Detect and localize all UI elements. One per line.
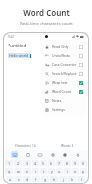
button[interactable]: Clipboard bbox=[24, 151, 31, 158]
button[interactable]: 3 bbox=[23, 160, 31, 166]
staticText: Search/Replace bbox=[52, 71, 79, 76]
button[interactable]: q bbox=[5, 168, 13, 174]
button[interactable]: Stickers bbox=[61, 151, 68, 158]
staticText: Word Count bbox=[23, 7, 70, 18]
staticText: h bbox=[53, 177, 56, 182]
button[interactable]: r bbox=[32, 168, 39, 174]
staticText: o bbox=[74, 169, 77, 174]
staticText: 9:41 bbox=[8, 35, 15, 39]
staticText: 1 bbox=[8, 161, 11, 166]
staticText: u bbox=[58, 169, 61, 174]
staticText: g bbox=[44, 177, 47, 182]
button[interactable]: 1 bbox=[5, 160, 13, 166]
button[interactable]: a bbox=[7, 176, 14, 182]
staticText: 2 bbox=[17, 161, 20, 166]
staticText: l bbox=[81, 177, 82, 182]
staticText: y bbox=[51, 169, 53, 174]
staticText: j bbox=[63, 177, 64, 182]
staticText: q bbox=[8, 169, 11, 174]
staticText: k bbox=[71, 177, 73, 182]
button[interactable]: h bbox=[50, 176, 58, 182]
staticText: w bbox=[17, 169, 20, 174]
button[interactable]: 7 bbox=[56, 160, 63, 166]
staticText: 3 bbox=[26, 161, 29, 166]
staticText: 6 bbox=[50, 161, 53, 166]
staticText: Notes bbox=[52, 98, 83, 103]
button[interactable]: Read Only bbox=[42, 42, 86, 51]
button[interactable]: l bbox=[77, 176, 85, 182]
button[interactable]: s bbox=[15, 176, 22, 182]
button[interactable]: Settings bbox=[49, 151, 56, 158]
staticText: 5 bbox=[42, 161, 45, 166]
staticText: 9 bbox=[74, 161, 77, 166]
button[interactable]: 6 bbox=[48, 160, 55, 166]
button[interactable]: j bbox=[59, 176, 67, 182]
button[interactable]: p bbox=[80, 168, 87, 174]
button[interactable]: Case Converter bbox=[42, 60, 86, 69]
button[interactable]: y bbox=[48, 168, 55, 174]
button[interactable]: w bbox=[14, 168, 22, 174]
staticText: *untitled bbox=[8, 43, 27, 49]
button[interactable]: Settings bbox=[42, 105, 86, 114]
button[interactable]: Notes bbox=[42, 96, 86, 105]
staticText: Read Only bbox=[52, 44, 79, 49]
button[interactable]: 8 bbox=[64, 160, 71, 166]
button[interactable]: Undo/Redo bbox=[42, 51, 86, 60]
staticText: Word Count bbox=[52, 89, 79, 94]
staticText: d bbox=[26, 177, 29, 182]
staticText: Hello world bbox=[9, 53, 29, 58]
staticText: Undo/Redo bbox=[52, 53, 79, 58]
button[interactable]: Voice input bbox=[74, 151, 81, 158]
staticText: p bbox=[82, 169, 85, 174]
button[interactable]: o bbox=[72, 168, 79, 174]
button[interactable]: t bbox=[40, 168, 47, 174]
button[interactable]: f bbox=[32, 176, 40, 182]
button[interactable]: i bbox=[64, 168, 71, 174]
staticText: e bbox=[26, 169, 29, 174]
staticText: Words 3 bbox=[61, 144, 74, 148]
button[interactable]: u bbox=[56, 168, 63, 174]
button[interactable]: d bbox=[23, 176, 31, 182]
button[interactable]: e bbox=[23, 168, 31, 174]
staticText: t bbox=[43, 169, 45, 174]
staticText: 8 bbox=[66, 161, 69, 166]
staticText: 4 bbox=[34, 161, 37, 166]
button[interactable]: GIF bbox=[36, 151, 43, 158]
staticText: a bbox=[9, 177, 12, 182]
staticText: f bbox=[35, 177, 37, 182]
button[interactable]: k bbox=[68, 176, 76, 182]
button[interactable]: Keyboard bbox=[11, 151, 18, 158]
button[interactable]: Wrap text bbox=[42, 78, 86, 87]
staticText: Settings bbox=[52, 107, 83, 112]
staticText: s bbox=[18, 177, 20, 182]
staticText: Characters 14 bbox=[15, 144, 36, 148]
button[interactable]: 9 bbox=[72, 160, 79, 166]
staticText: Real-time characters count bbox=[20, 21, 73, 27]
staticText: r bbox=[35, 169, 37, 174]
staticText: 0 bbox=[82, 161, 85, 166]
button[interactable]: 0 bbox=[80, 160, 87, 166]
staticText: 7 bbox=[58, 161, 61, 166]
button[interactable]: 4 bbox=[32, 160, 39, 166]
staticText: Case Converter bbox=[52, 62, 79, 67]
staticText: Wrap text bbox=[52, 80, 79, 85]
staticText: i bbox=[67, 169, 68, 174]
button[interactable]: 5 bbox=[40, 160, 47, 166]
button[interactable]: 2 bbox=[14, 160, 22, 166]
button[interactable]: Word Count bbox=[42, 87, 86, 96]
button[interactable]: g bbox=[41, 176, 49, 182]
button[interactable]: Search/Replace bbox=[42, 69, 86, 78]
